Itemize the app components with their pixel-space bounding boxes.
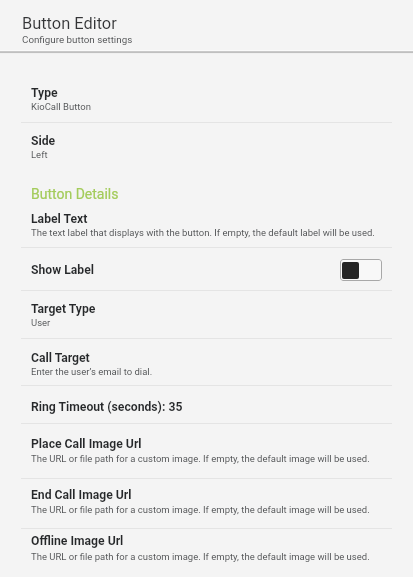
button[interactable]: Side, Left bbox=[0, 123, 413, 172]
button[interactable]: Ring Timeout bbox=[0, 386, 413, 423]
staticText: The text label that displays with the bu… bbox=[31, 227, 375, 238]
staticText: End Call Image Url bbox=[31, 488, 132, 502]
staticText: KioCall Button bbox=[31, 101, 91, 112]
button[interactable]: Target Type, User bbox=[0, 291, 413, 338]
staticText: Side bbox=[31, 134, 56, 148]
staticText: Call Target bbox=[31, 351, 90, 365]
button[interactable]: Type, KioCall Button bbox=[0, 53, 413, 122]
staticText: Show Label bbox=[31, 263, 95, 277]
staticText: Configure button settings bbox=[22, 34, 133, 45]
staticText: Label Text bbox=[31, 212, 88, 226]
staticText: The URL or file path for a custom image.… bbox=[31, 504, 370, 515]
button[interactable]: Place Call Image Url bbox=[0, 424, 413, 478]
staticText: The URL or file path for a custom image.… bbox=[31, 453, 370, 464]
staticText: User bbox=[31, 317, 51, 328]
staticText: Button Details bbox=[31, 186, 119, 202]
button[interactable]: End Call Image Url bbox=[0, 479, 413, 528]
staticText: Place Call Image Url bbox=[31, 437, 142, 451]
button[interactable]: Label Text bbox=[0, 206, 413, 247]
staticText: Enter the user’s email to dial. bbox=[31, 366, 153, 377]
button[interactable] bbox=[0, 0, 413, 52]
button[interactable]: Show Label toggle bbox=[340, 259, 382, 281]
button[interactable]: Show Label bbox=[0, 248, 413, 290]
staticText: Button Editor bbox=[22, 14, 117, 33]
staticText: Ring Timeout (seconds): 35 bbox=[31, 400, 183, 414]
staticText: Type bbox=[31, 86, 58, 100]
button[interactable]: Call Target bbox=[0, 339, 413, 385]
button[interactable]: Offline Image Url bbox=[0, 529, 413, 577]
staticText: Offline Image Url bbox=[31, 534, 124, 548]
staticText: Left bbox=[31, 149, 48, 160]
staticText: The URL or file path for a custom image.… bbox=[31, 551, 370, 562]
staticText: Target Type bbox=[31, 302, 96, 316]
